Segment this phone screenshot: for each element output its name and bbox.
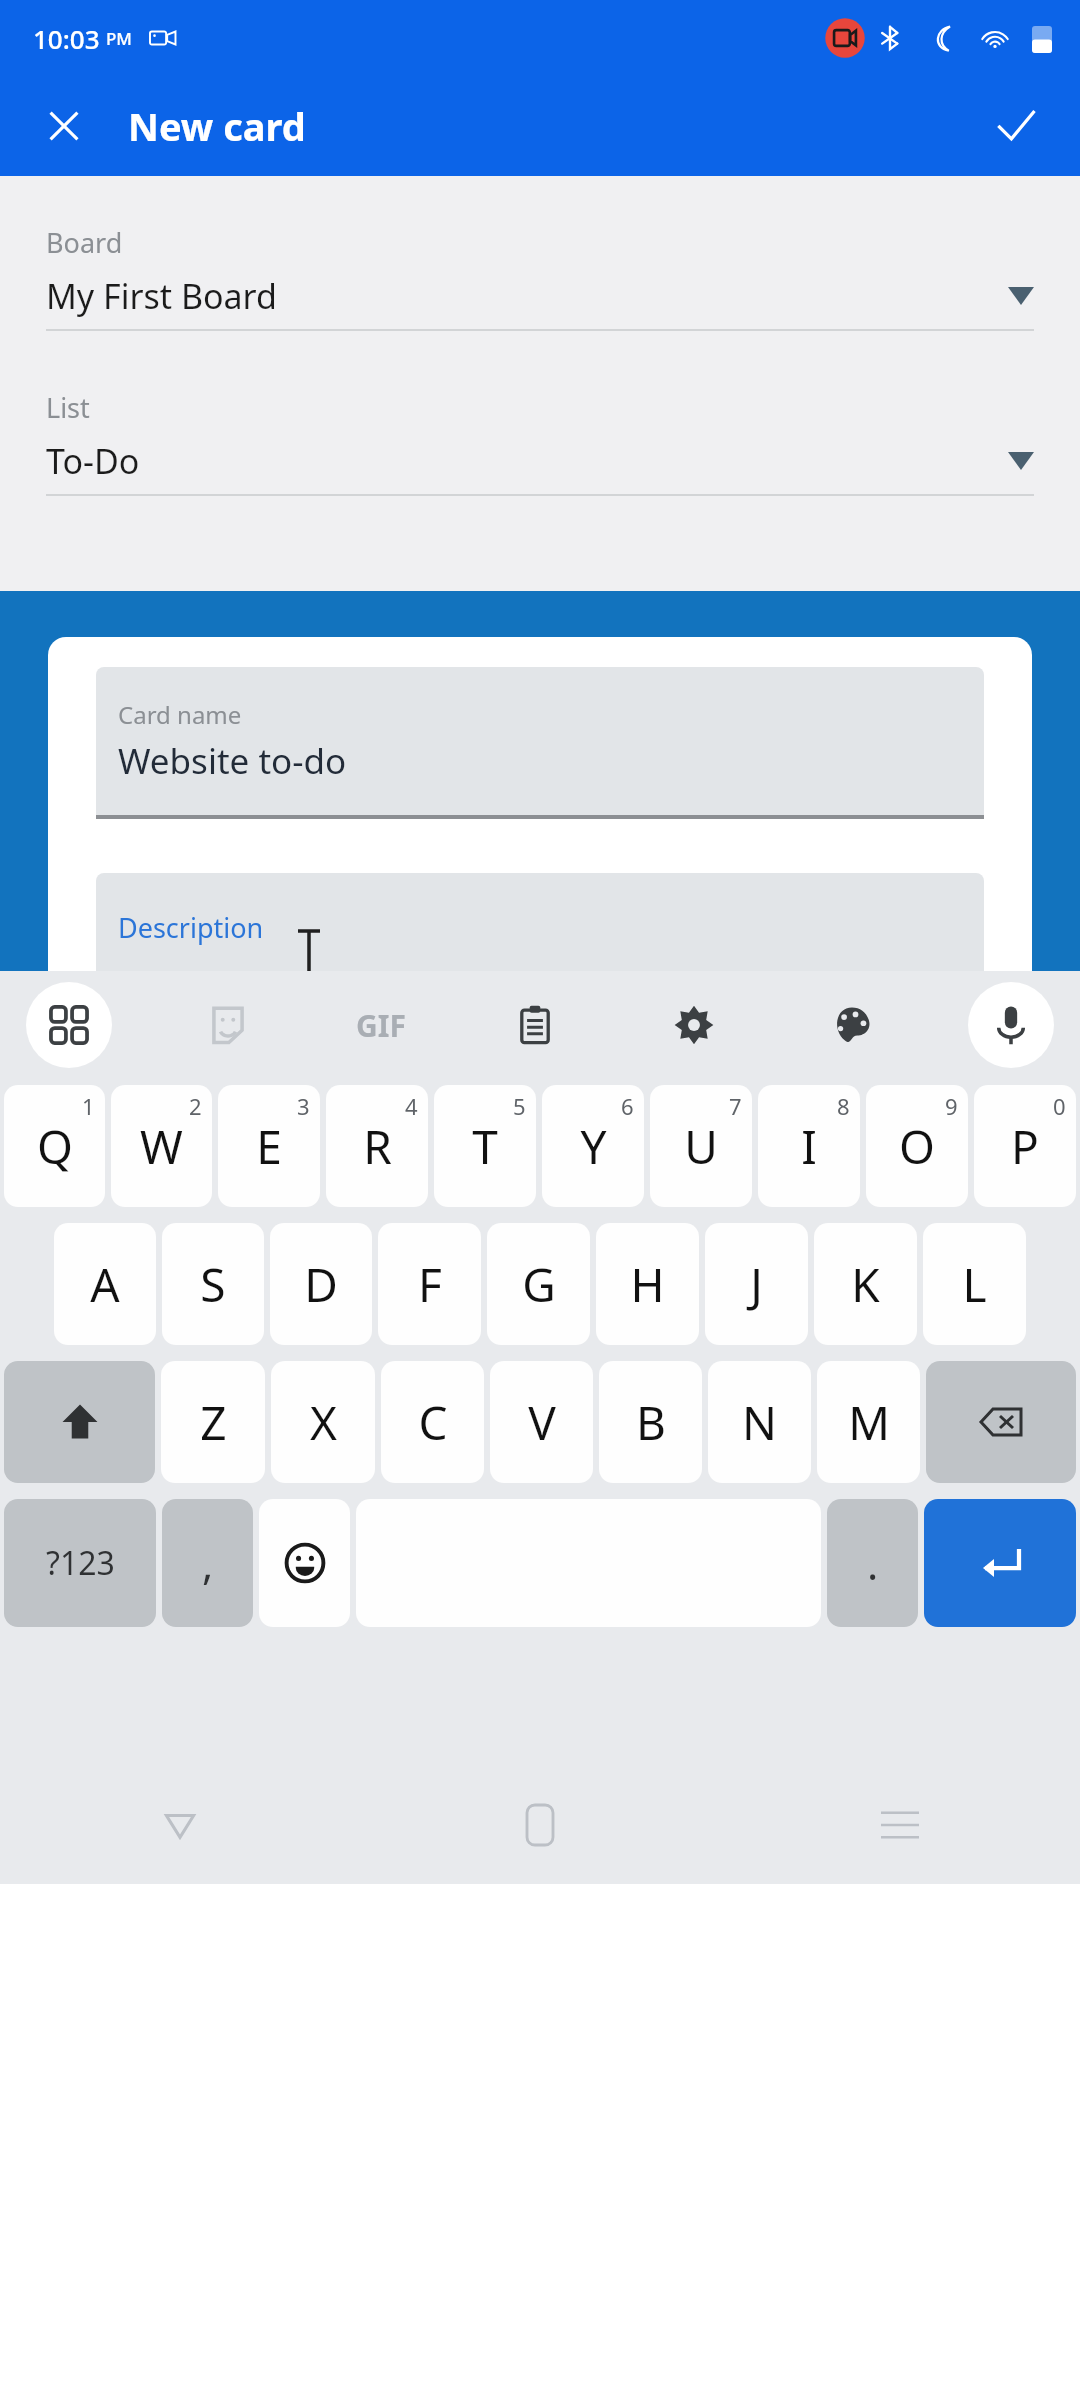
- staticText: Z: [200, 1391, 227, 1454]
- staticText: 4: [405, 1091, 418, 1121]
- button[interactable]: ,: [162, 1499, 253, 1627]
- staticText: U: [684, 1115, 718, 1178]
- button[interactable]: L: [923, 1223, 1026, 1345]
- button[interactable]: F: [378, 1223, 481, 1345]
- staticText: E: [256, 1115, 282, 1178]
- staticText: N: [742, 1391, 777, 1454]
- staticText: 0: [1053, 1091, 1066, 1121]
- staticText: New card: [128, 100, 306, 152]
- staticText: ?123: [46, 1541, 115, 1585]
- staticText: Y: [580, 1115, 607, 1178]
- button[interactable]: O: [866, 1085, 968, 1207]
- button[interactable]: Z: [161, 1361, 265, 1483]
- staticText: 9: [945, 1091, 958, 1121]
- staticText: 10:03: [33, 21, 100, 56]
- button[interactable]: ?123: [4, 1499, 156, 1627]
- button[interactable]: Emoji: [259, 1499, 350, 1627]
- button[interactable]: Close: [28, 90, 100, 162]
- staticText: PM: [106, 27, 132, 50]
- staticText: F: [418, 1253, 442, 1316]
- button[interactable]: Stickers: [185, 982, 271, 1068]
- button[interactable]: R: [326, 1085, 428, 1207]
- staticText: List: [46, 389, 90, 426]
- button[interactable]: T: [434, 1085, 536, 1207]
- staticText: W: [140, 1115, 183, 1178]
- button[interactable]: U: [650, 1085, 752, 1207]
- button[interactable]: V: [490, 1361, 593, 1483]
- staticText: 7: [729, 1091, 742, 1121]
- staticText: 3: [297, 1091, 310, 1121]
- staticText: J: [750, 1253, 763, 1316]
- staticText: ,: [202, 1535, 214, 1592]
- staticText: Card name: [118, 698, 242, 731]
- button[interactable]: Back: [0, 1766, 360, 1884]
- staticText: 8: [837, 1091, 850, 1121]
- button[interactable]: List: [46, 389, 1034, 496]
- staticText: 5: [513, 1091, 526, 1121]
- button[interactable]: Settings: [651, 982, 737, 1068]
- staticText: Description: [118, 909, 264, 946]
- staticText: Board: [46, 224, 123, 261]
- button[interactable]: H: [596, 1223, 699, 1345]
- button[interactable]: Y: [542, 1085, 644, 1207]
- button[interactable]: K: [814, 1223, 917, 1345]
- staticText: M: [848, 1391, 890, 1454]
- staticText: My First Board: [46, 273, 1008, 319]
- button[interactable]: W: [111, 1085, 212, 1207]
- staticText: I: [801, 1115, 817, 1178]
- button[interactable]: Clipboard: [492, 982, 578, 1068]
- button[interactable]: Voice input: [968, 982, 1054, 1068]
- staticText: V: [528, 1391, 556, 1454]
- button[interactable]: Backspace: [926, 1361, 1076, 1483]
- button[interactable]: C: [381, 1361, 484, 1483]
- staticText: .: [867, 1535, 879, 1592]
- button[interactable]: E: [218, 1085, 320, 1207]
- staticText: 2: [189, 1091, 202, 1121]
- button[interactable]: B: [599, 1361, 702, 1483]
- staticText: D: [304, 1253, 338, 1316]
- button[interactable]: N: [708, 1361, 811, 1483]
- staticText: S: [200, 1253, 226, 1316]
- staticText: G: [522, 1253, 556, 1316]
- button[interactable]: Enter: [924, 1499, 1076, 1627]
- staticText: Q: [37, 1115, 73, 1178]
- staticText: B: [636, 1391, 666, 1454]
- button[interactable]: I: [758, 1085, 860, 1207]
- button[interactable]: Themes: [809, 982, 895, 1068]
- button[interactable]: .: [827, 1499, 918, 1627]
- staticText: O: [899, 1115, 935, 1178]
- staticText: X: [310, 1391, 337, 1454]
- staticText: GIF: [356, 1005, 406, 1046]
- button[interactable]: M: [817, 1361, 920, 1483]
- button[interactable]: Toolbox: [26, 982, 112, 1068]
- button[interactable]: J: [705, 1223, 808, 1345]
- button[interactable]: Recents: [720, 1766, 1080, 1884]
- staticText: P: [1011, 1115, 1039, 1178]
- staticText: Website to-do: [118, 737, 347, 785]
- button[interactable]: Save: [978, 88, 1054, 164]
- staticText: T: [472, 1115, 498, 1178]
- staticText: A: [90, 1253, 120, 1316]
- button[interactable]: Description: [96, 873, 984, 971]
- staticText: H: [630, 1253, 665, 1316]
- staticText: R: [363, 1115, 392, 1178]
- staticText: L: [962, 1253, 987, 1316]
- staticText: 6: [621, 1091, 634, 1121]
- staticText: K: [851, 1253, 880, 1316]
- button[interactable]: GIF: [343, 987, 419, 1063]
- button[interactable]: G: [487, 1223, 590, 1345]
- button[interactable]: Q: [4, 1085, 105, 1207]
- staticText: C: [418, 1391, 448, 1454]
- staticText: To-Do: [46, 438, 1008, 484]
- button[interactable]: X: [271, 1361, 375, 1483]
- button[interactable]: Board: [46, 224, 1034, 331]
- button[interactable]: A: [54, 1223, 156, 1345]
- button[interactable]: Shift: [4, 1361, 155, 1483]
- button[interactable]: D: [270, 1223, 372, 1345]
- button[interactable]: P: [974, 1085, 1076, 1207]
- staticText: 1: [82, 1091, 95, 1121]
- button[interactable]: S: [162, 1223, 264, 1345]
- button[interactable]: Card name: [96, 667, 984, 819]
- button[interactable]: Home: [360, 1766, 720, 1884]
